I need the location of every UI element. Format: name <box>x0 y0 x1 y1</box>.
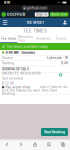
button[interactable]: Back <box>0 139 14 150</box>
staticText: Pick the time(s) you want, then Start Bo… <box>2 89 57 95</box>
staticText: Starting <box>2 61 14 65</box>
button[interactable]: Menu <box>2 18 9 27</box>
staticText: 9:40 AM · Saturday <box>5 51 35 54</box>
staticText: $ 72.00 <box>2 82 14 85</box>
button[interactable]: Forward <box>14 139 28 150</box>
button[interactable]: Share <box>28 139 42 150</box>
staticText: 9:40 <box>61 61 68 65</box>
staticText: 9:41 <box>3 0 10 5</box>
staticText: BOOKING DETAILS <box>2 67 29 71</box>
staticText: Start Booking <box>44 130 65 134</box>
button[interactable]: Events <box>52 35 70 43</box>
staticText: Lakeside · 18 <box>47 56 68 60</box>
button[interactable]: Tee times <box>0 35 17 43</box>
staticText: GREEN FEE (PER PLAYER) <box>2 72 41 75</box>
button[interactable]: Account <box>61 18 68 27</box>
button[interactable]: Book now <box>50 12 69 17</box>
staticText: Sign in <box>36 13 47 16</box>
button[interactable]: GOLFHUB <box>1 12 25 17</box>
staticText: add a 1-minute slot <box>40 85 68 89</box>
staticText: Tee times <box>1 37 17 40</box>
button[interactable]: Start Booking <box>41 128 68 136</box>
staticText: golfhub.com <box>27 6 47 10</box>
staticText: •·· <box>57 0 61 5</box>
button[interactable]: golfhub.com <box>21 6 49 10</box>
staticText: Pay at pro shop <box>5 85 30 89</box>
staticText: Cart included <box>2 77 23 80</box>
staticText: Events <box>56 37 67 40</box>
staticText: GOLFHUB <box>7 12 25 17</box>
button[interactable]: Memberships <box>17 35 35 43</box>
staticText: TEE TIMES <box>23 28 47 34</box>
staticText: Course <box>2 56 13 60</box>
staticText: Tee times available today <box>6 45 48 48</box>
staticText: Book now <box>51 13 67 16</box>
staticText: TEE SHEET <box>26 20 44 25</box>
button[interactable]: Sign in <box>35 12 49 17</box>
button[interactable]: Tabs <box>56 139 70 150</box>
button[interactable]: Academy <box>35 35 52 43</box>
staticText: Memberships <box>18 35 34 42</box>
button[interactable]: Bookmarks <box>42 139 56 150</box>
staticText: Academy <box>36 37 51 40</box>
